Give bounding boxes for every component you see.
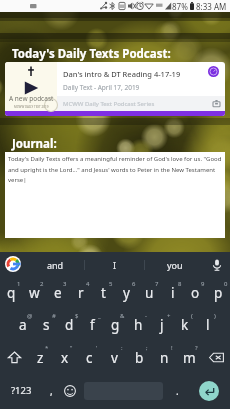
button[interactable]: o	[184, 277, 207, 309]
staticText: 0	[224, 280, 228, 288]
button[interactable]: d	[58, 309, 81, 341]
button[interactable]: l	[196, 309, 219, 341]
staticText: z	[37, 349, 44, 367]
button[interactable]: s	[35, 309, 58, 341]
staticText: g	[111, 316, 120, 334]
staticText: ;	[146, 344, 148, 352]
staticText: 8:33 AM	[196, 1, 227, 12]
button[interactable]: j	[150, 309, 173, 341]
button[interactable]: Dan's intro & DT Reading 4-17-19	[5, 62, 225, 116]
staticText: f	[90, 316, 95, 334]
staticText: n	[160, 349, 169, 367]
button[interactable]: you	[145, 252, 204, 277]
staticText: 1	[17, 280, 21, 288]
button[interactable]: p	[207, 277, 230, 309]
staticText: v	[111, 349, 118, 367]
staticText: ?	[195, 344, 198, 352]
staticText: .	[176, 384, 179, 398]
staticText: m	[183, 349, 196, 367]
staticText: 4	[86, 280, 90, 288]
staticText: Daily Text - April 17, 2019	[63, 83, 140, 92]
button[interactable]: ?123	[0, 374, 42, 407]
button[interactable]: ,	[42, 374, 60, 407]
staticText: 6	[132, 280, 136, 288]
button[interactable]: .	[166, 374, 188, 407]
staticText: t	[101, 284, 106, 302]
staticText: (	[191, 312, 193, 320]
button[interactable]: y	[115, 277, 138, 309]
staticText: x	[61, 349, 69, 367]
button[interactable]: Shift	[0, 341, 28, 374]
button[interactable]: x	[52, 341, 77, 374]
staticText: Today's Daily Texts offers a meaningful …	[8, 155, 223, 184]
button[interactable]: f	[81, 309, 104, 341]
staticText: ?123	[11, 384, 32, 397]
staticText: @	[27, 312, 33, 320]
button[interactable]: Emoji	[60, 374, 80, 407]
button[interactable]: h	[127, 309, 150, 341]
button[interactable]: t	[92, 277, 115, 309]
staticText: -	[145, 312, 147, 320]
staticText: e	[54, 284, 62, 302]
button[interactable]: i	[161, 277, 184, 309]
staticText: *	[45, 344, 49, 352]
button[interactable]: v	[102, 341, 127, 374]
staticText: i	[171, 284, 175, 302]
staticText: k	[181, 316, 189, 334]
staticText: h	[134, 316, 143, 334]
staticText: +	[167, 312, 171, 320]
button[interactable]: Enter	[199, 381, 219, 401]
staticText: w	[29, 284, 40, 302]
staticText: q	[7, 284, 16, 302]
button[interactable]: w	[23, 277, 46, 309]
staticText: c	[86, 349, 93, 367]
staticText: $	[75, 312, 79, 320]
button[interactable]: Voice input	[204, 252, 230, 277]
button[interactable]: m	[177, 341, 202, 374]
staticText: &	[120, 312, 125, 320]
staticText: )	[214, 312, 216, 320]
button[interactable]: g	[104, 309, 127, 341]
staticText: and	[47, 259, 64, 271]
staticText: u	[145, 284, 154, 302]
staticText: d	[65, 316, 74, 334]
button[interactable]: Backspace	[202, 341, 230, 374]
staticText: 7	[155, 280, 159, 288]
staticText: :	[121, 344, 123, 352]
button[interactable]: e	[46, 277, 69, 309]
staticText: I	[113, 259, 117, 271]
button[interactable]: r	[69, 277, 92, 309]
button[interactable]: Today's Daily Texts offers a meaningful …	[5, 152, 225, 238]
button[interactable]: n	[152, 341, 177, 374]
staticText: you	[167, 259, 183, 271]
button[interactable]: b	[127, 341, 152, 374]
button[interactable]: Google	[0, 252, 26, 277]
staticText: !	[171, 344, 173, 352]
button[interactable]: u	[138, 277, 161, 309]
staticText: ,	[50, 384, 53, 398]
staticText: 5	[109, 280, 113, 288]
button[interactable]: k	[173, 309, 196, 341]
button[interactable]: and	[26, 252, 84, 277]
staticText: MCWW Daily Text Podcast Series	[63, 100, 155, 108]
button[interactable]: z	[28, 341, 52, 374]
staticText: o	[191, 284, 200, 302]
button[interactable]: I	[85, 252, 144, 277]
staticText: Journal:	[12, 136, 57, 152]
staticText: l	[206, 316, 210, 334]
staticText: r	[78, 284, 84, 302]
button[interactable]: c	[77, 341, 102, 374]
button[interactable]: q	[0, 277, 23, 309]
staticText: 87%	[172, 1, 188, 12]
staticText: 8	[178, 280, 182, 288]
staticText: j	[160, 316, 164, 334]
staticText: MCWW DAILY TEXT 2019	[14, 105, 49, 109]
staticText: y	[123, 284, 130, 302]
button[interactable]: a	[11, 309, 35, 341]
staticText: p	[214, 284, 223, 302]
staticText: 9	[201, 280, 205, 288]
staticText: b	[135, 349, 144, 367]
staticText: A new podcast	[9, 94, 54, 103]
staticText: a	[19, 316, 27, 334]
